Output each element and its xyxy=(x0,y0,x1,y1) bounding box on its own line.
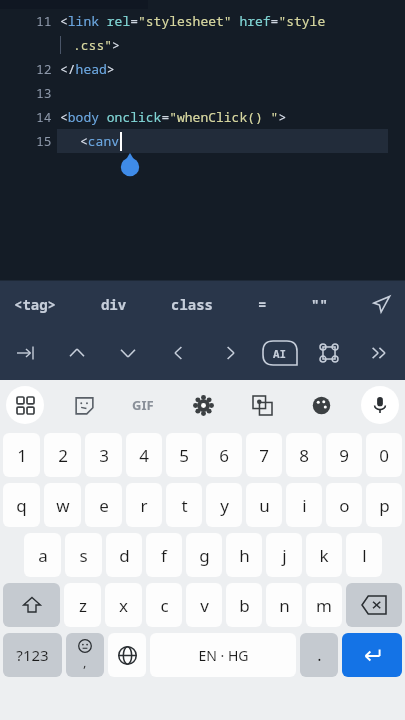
staticText: 15 xyxy=(36,132,52,150)
staticText: 4 xyxy=(139,444,149,467)
button[interactable]: Backspace xyxy=(346,583,402,627)
button[interactable]: m xyxy=(306,583,342,627)
staticText: d xyxy=(119,544,130,567)
staticText: <tag> xyxy=(14,295,56,314)
button[interactable]: Move up xyxy=(59,335,95,371)
button[interactable]: v xyxy=(186,583,222,627)
staticText: g xyxy=(199,544,210,567)
button[interactable]: s xyxy=(65,533,102,577)
button[interactable]: y xyxy=(206,483,242,527)
button[interactable]: Emoji and comma xyxy=(66,633,104,677)
button[interactable]: 2 xyxy=(44,433,81,477)
button[interactable]: o xyxy=(326,483,362,527)
button[interactable]: "" xyxy=(303,289,336,320)
staticText: j xyxy=(282,544,287,567)
staticText: </head> xyxy=(60,60,115,78)
button[interactable]: class xyxy=(163,289,221,320)
button[interactable]: 3 xyxy=(85,433,122,477)
button[interactable]: = xyxy=(250,289,275,320)
button[interactable]: Apps xyxy=(6,386,44,424)
button[interactable]: Shift xyxy=(3,583,60,627)
staticText: e xyxy=(99,494,109,517)
button[interactable]: a xyxy=(24,533,61,577)
button[interactable]: . xyxy=(300,633,338,677)
button[interactable]: Command xyxy=(312,336,346,370)
staticText: 5 xyxy=(179,444,189,467)
button[interactable]: z xyxy=(64,583,101,627)
button[interactable]: 6 xyxy=(206,433,242,477)
staticText: 0 xyxy=(379,444,389,467)
button[interactable]: c xyxy=(146,583,182,627)
staticText: <canv xyxy=(80,132,120,150)
button[interactable]: ?123 xyxy=(3,633,62,677)
button[interactable]: Tab xyxy=(8,335,44,371)
button[interactable]: u xyxy=(246,483,282,527)
button[interactable]: EN · HG xyxy=(150,633,296,677)
button[interactable]: Change language xyxy=(108,633,146,677)
staticText: h xyxy=(239,544,250,567)
button[interactable]: Translate xyxy=(243,386,281,424)
staticText: "" xyxy=(311,295,328,314)
button[interactable]: Move left xyxy=(161,335,197,371)
button[interactable]: p xyxy=(366,483,402,527)
staticText: 7 xyxy=(259,444,269,467)
button[interactable]: g xyxy=(186,533,222,577)
staticText: 13 xyxy=(36,84,52,102)
button[interactable]: 8 xyxy=(286,433,322,477)
staticText: w xyxy=(56,494,70,517)
button[interactable]: l xyxy=(346,533,382,577)
staticText: v xyxy=(200,594,209,617)
staticText: AI xyxy=(273,346,287,361)
button[interactable]: 5 xyxy=(166,433,202,477)
button[interactable]: i xyxy=(286,483,322,527)
staticText: 11 xyxy=(36,12,52,30)
button[interactable]: div xyxy=(93,289,135,320)
button[interactable]: x xyxy=(105,583,142,627)
button[interactable]: Send xyxy=(365,287,399,321)
button[interactable]: Settings xyxy=(184,386,222,424)
button[interactable]: Enter xyxy=(342,633,402,677)
button[interactable]: e xyxy=(85,483,122,527)
button[interactable]: GIF xyxy=(124,386,162,424)
button[interactable]: q xyxy=(3,483,40,527)
button[interactable]: Move right xyxy=(212,335,248,371)
button[interactable]: 4 xyxy=(126,433,162,477)
staticText: EN · HG xyxy=(198,646,249,665)
staticText: n xyxy=(279,594,290,617)
button[interactable]: f xyxy=(146,533,182,577)
staticText: x xyxy=(119,594,128,617)
staticText: <body onclick="whenClick() "> xyxy=(60,108,287,126)
staticText: <link rel="stylesheet" href="style xyxy=(60,12,326,30)
button[interactable]: 0 xyxy=(366,433,402,477)
staticText: .css"> xyxy=(73,36,120,54)
staticText: i xyxy=(302,494,307,517)
button[interactable]: 1 xyxy=(3,433,40,477)
staticText: 6 xyxy=(219,444,229,467)
button[interactable]: Voice input xyxy=(361,386,399,424)
button[interactable]: <tag> xyxy=(6,289,64,320)
button[interactable]: k xyxy=(306,533,342,577)
button[interactable]: AI assist xyxy=(263,341,297,365)
button[interactable]: More xyxy=(361,335,397,371)
staticText: z xyxy=(79,594,87,617)
staticText: 3 xyxy=(99,444,109,467)
staticText: q xyxy=(16,494,27,517)
button[interactable]: b xyxy=(226,583,262,627)
button[interactable]: w xyxy=(44,483,81,527)
button[interactable]: 7 xyxy=(246,433,282,477)
staticText: 1 xyxy=(17,444,27,467)
button[interactable]: n xyxy=(266,583,302,627)
button[interactable]: h xyxy=(226,533,262,577)
button[interactable]: Move down xyxy=(110,335,146,371)
staticText: class xyxy=(171,295,213,314)
staticText: m xyxy=(316,594,332,617)
button[interactable]: t xyxy=(166,483,202,527)
button[interactable]: d xyxy=(106,533,142,577)
button[interactable]: r xyxy=(126,483,162,527)
staticText: ?123 xyxy=(16,645,49,665)
button[interactable]: j xyxy=(266,533,302,577)
button[interactable]: Stickers xyxy=(65,386,103,424)
staticText: = xyxy=(258,295,267,314)
button[interactable]: 9 xyxy=(326,433,362,477)
button[interactable]: Theme xyxy=(302,386,340,424)
